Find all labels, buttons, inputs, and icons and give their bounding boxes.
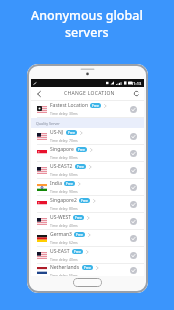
staticText: Free (84, 265, 91, 270)
staticText: Free (92, 103, 99, 108)
staticText: Time delay: 80ms (50, 206, 78, 211)
button[interactable]: US-WEST (31, 213, 144, 229)
staticText: Free (75, 215, 82, 220)
staticText: Anonymous global (31, 7, 143, 24)
staticText: Free (74, 249, 81, 254)
staticText: Fastest Location (50, 102, 88, 109)
staticText: Time delay: 30ms (50, 111, 78, 116)
staticText: servers (65, 24, 109, 41)
button[interactable]: German3 (31, 230, 144, 246)
staticText: Free (81, 198, 88, 203)
button[interactable]: US-NJ (31, 128, 144, 144)
staticText: Time delay: 40ms (50, 257, 78, 262)
button[interactable]: US-EAST2 (31, 162, 144, 178)
staticText: Netherlands (50, 264, 80, 271)
staticText: Time delay: 40ms (50, 223, 78, 228)
staticText: Free (66, 181, 73, 186)
staticText: Free (77, 164, 84, 169)
staticText: German3 (50, 231, 72, 238)
staticText: 11:13 (131, 81, 142, 86)
staticText: US-EAST2 (50, 163, 73, 170)
staticText: Time delay: 90ms (50, 189, 78, 194)
staticText: Time delay: 70ms (50, 138, 78, 143)
staticText: Time delay: 80ms (50, 155, 78, 160)
staticText: Time delay: 60ms (50, 172, 78, 177)
button[interactable]: Netherlands (31, 264, 144, 276)
staticText: Singapore2 (50, 197, 77, 204)
staticText: Free (78, 147, 85, 152)
button[interactable]: Singapore (31, 145, 144, 161)
button[interactable]: Singapore2 (31, 196, 144, 212)
button[interactable]: Fastest Location (31, 101, 144, 117)
staticText: CHANGE LOCATION (64, 90, 115, 97)
staticText: US-WEST (50, 214, 71, 221)
staticText: US-NJ (50, 129, 64, 136)
staticText: Quality Server (36, 121, 60, 126)
staticText: Time delay: 55ms (50, 273, 78, 276)
staticText: Free (76, 232, 83, 237)
staticText: Singapore (50, 146, 74, 153)
staticText: Free (68, 130, 75, 135)
button[interactable]: Back (34, 89, 43, 98)
button[interactable]: India (31, 179, 144, 195)
button[interactable]: Refresh (132, 89, 141, 98)
staticText: Time delay: 62ms (50, 240, 78, 245)
button[interactable]: US-EAST (31, 247, 144, 263)
staticText: US-EAST (50, 248, 70, 255)
staticText: India (50, 180, 62, 187)
